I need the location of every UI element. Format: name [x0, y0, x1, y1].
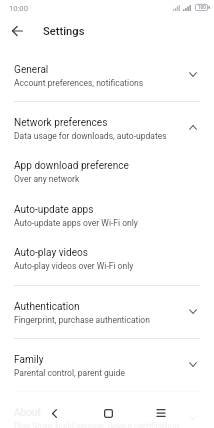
- staticText: Auto-update apps: [14, 204, 94, 216]
- staticText: Auto-play videos: [14, 247, 89, 259]
- staticText: Settings: [43, 25, 85, 38]
- staticText: General: [14, 64, 49, 76]
- staticText: Account preferences, notifications: [14, 78, 144, 88]
- staticText: App download preference: [14, 160, 129, 172]
- staticText: Auto-play videos over Wi-Fi only: [14, 261, 134, 271]
- button[interactable]: Network preferences: [0, 102, 214, 155]
- staticText: 100: [198, 5, 206, 10]
- staticText: 10:00: [9, 4, 28, 13]
- staticText: Fingerprint, purchase authentication: [14, 315, 150, 325]
- button[interactable]: Auto-update apps: [0, 198, 214, 242]
- button[interactable]: Navigate up: [5, 19, 29, 43]
- staticText: Over any network: [14, 174, 80, 184]
- staticText: Family: [14, 354, 44, 366]
- button[interactable]: Recent apps: [149, 402, 173, 424]
- staticText: Network preferences: [14, 117, 108, 129]
- button[interactable]: App download preference: [0, 154, 214, 198]
- staticText: Play Store, build version, device certif…: [14, 421, 180, 428]
- button[interactable]: Family: [0, 339, 214, 392]
- staticText: Auto-update apps over Wi-Fi only: [14, 218, 138, 228]
- staticText: Data usage for downloads, auto-updates: [14, 131, 167, 141]
- button[interactable]: Home: [96, 402, 120, 424]
- button[interactable]: Auto-play videos: [0, 241, 214, 285]
- button[interactable]: Back: [42, 402, 66, 424]
- staticText: About: [14, 407, 41, 419]
- staticText: Authentication: [14, 301, 80, 313]
- button[interactable]: General: [0, 49, 214, 102]
- staticText: Parental control, parent guide: [14, 368, 125, 378]
- button[interactable]: Authentication: [0, 286, 214, 339]
- button[interactable]: About: [0, 392, 214, 428]
